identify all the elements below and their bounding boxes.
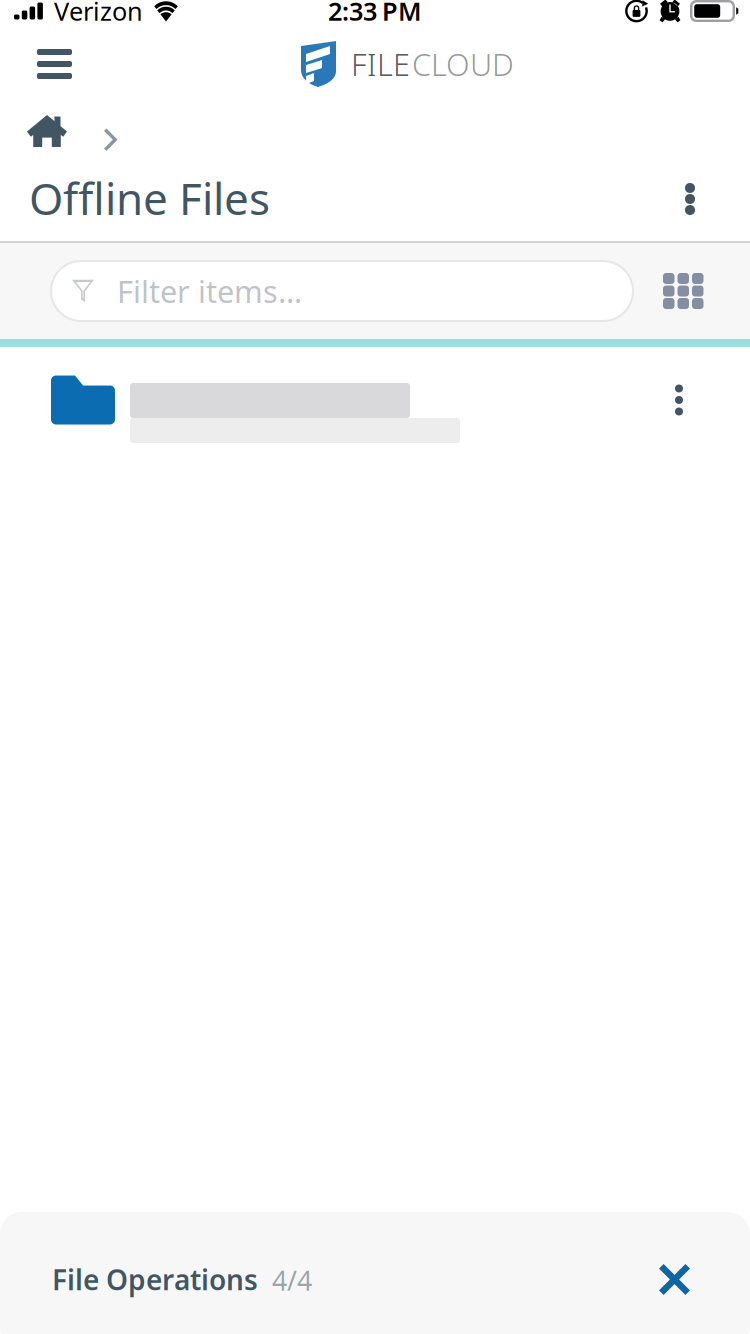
staticText: FILE (351, 44, 410, 84)
button[interactable]: More options (661, 169, 719, 233)
button[interactable]: Item options (657, 368, 701, 431)
staticText: CLOUD (412, 44, 514, 84)
button[interactable]: Close (645, 1250, 704, 1309)
staticText: File Operations (52, 1261, 258, 1298)
button[interactable]: Menu (17, 35, 92, 93)
staticText: 2:33 (328, 0, 377, 28)
staticText: PM (382, 0, 422, 28)
staticText: Offline Files (29, 169, 270, 227)
button[interactable]: Home (18, 101, 76, 153)
staticText: Verizon (54, 0, 143, 28)
button[interactable]: Grid view (649, 257, 717, 325)
button[interactable] (0, 347, 750, 453)
button[interactable]: Filter items... (51, 261, 633, 321)
staticText: 4/4 (272, 1263, 312, 1298)
staticText: Filter items... (117, 271, 302, 311)
